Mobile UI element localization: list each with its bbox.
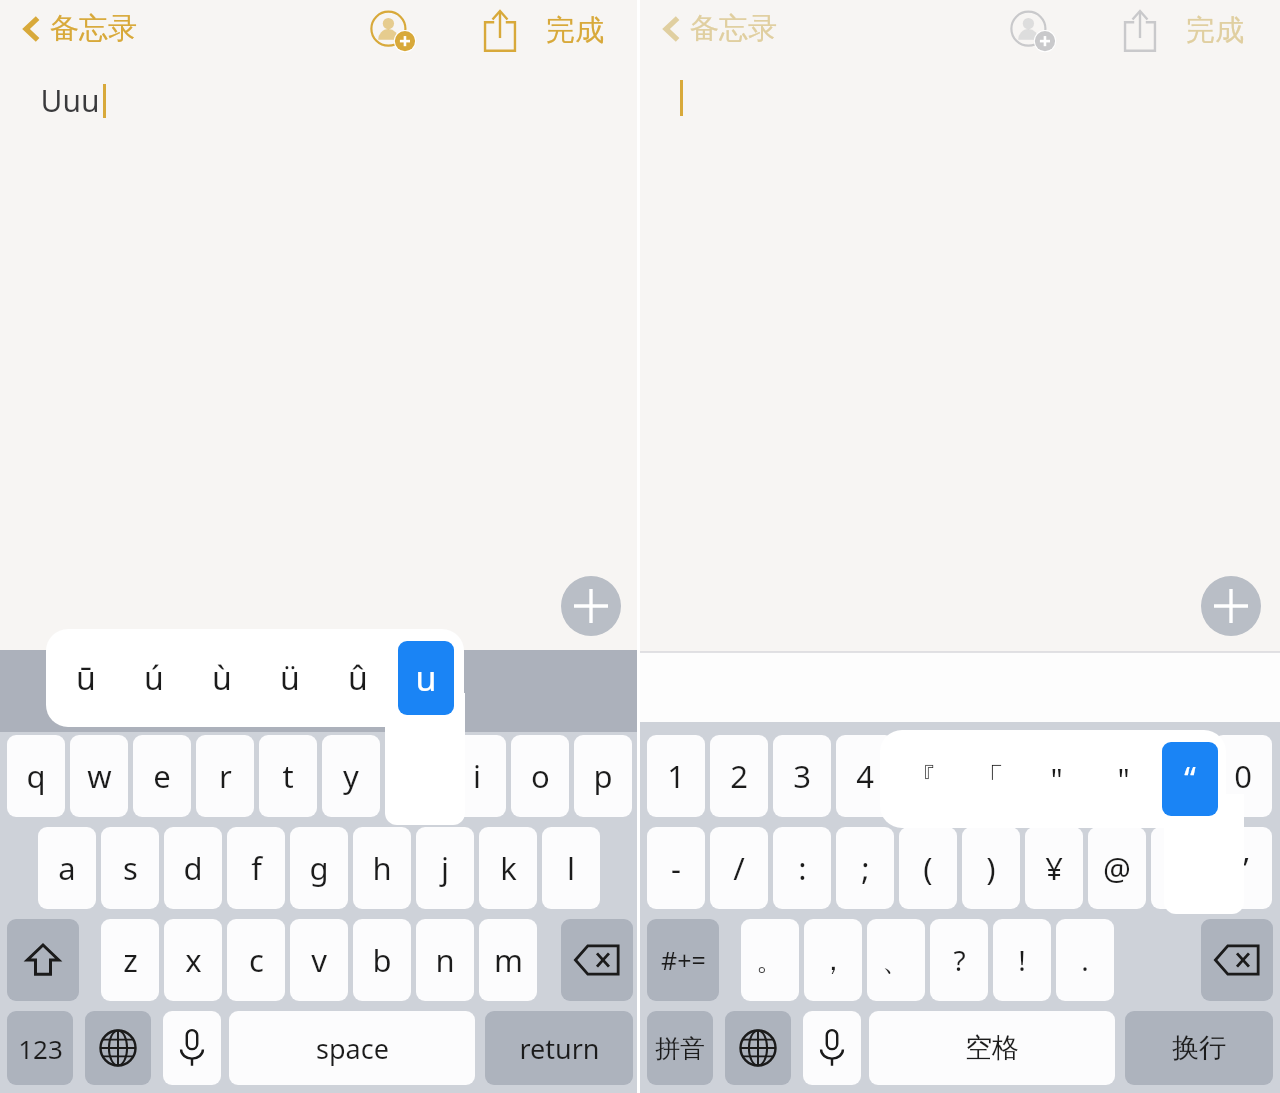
button[interactable]: : [773,827,831,909]
button[interactable]: ， [804,919,862,1001]
button[interactable] [803,1011,861,1085]
button[interactable]: Add attachment [561,576,621,636]
button[interactable]: Add people [362,6,424,56]
button[interactable]: 6 [962,735,1020,817]
button[interactable]: h [353,827,411,909]
button[interactable]: @ [1088,827,1146,909]
staticText: a [58,847,76,889]
button[interactable]: q [7,735,65,817]
button[interactable]: " [1095,742,1151,816]
button[interactable]: 完成 [1180,8,1250,53]
button[interactable]: e [133,735,191,817]
button[interactable]: u [398,641,454,715]
staticText: Uuu [40,80,100,121]
button[interactable]: 4 [836,735,894,817]
button[interactable]: Share [472,6,528,56]
button[interactable]: w [70,735,128,817]
staticText: : [798,847,807,889]
button[interactable] [85,1011,151,1085]
button[interactable]: 拼音 [647,1011,713,1085]
button[interactable]: “ [1162,742,1218,816]
staticText: 9 [1171,755,1189,797]
button[interactable]: “ [1151,827,1209,909]
button[interactable]: ! [993,919,1051,1001]
button[interactable]: j [416,827,474,909]
button[interactable]: " [1028,742,1084,816]
button[interactable]: / [710,827,768,909]
button[interactable]: 8 [1088,735,1146,817]
button[interactable]: i [448,735,506,817]
staticText: ” [1237,847,1249,889]
button[interactable]: 2 [710,735,768,817]
button[interactable]: 9 [1151,735,1209,817]
button[interactable]: 备忘录 [658,6,781,51]
button[interactable]: b [353,919,411,1001]
button[interactable]: Add attachment [1201,576,1261,636]
button[interactable]: û [330,641,386,715]
button[interactable]: Add people [1002,6,1064,56]
button[interactable]: c [227,919,285,1001]
button[interactable]: 7 [1025,735,1083,817]
button[interactable]: return [485,1011,633,1085]
button[interactable]: f [227,827,285,909]
button[interactable]: 1 [647,735,705,817]
button[interactable]: s [101,827,159,909]
button[interactable]: p [574,735,632,817]
button[interactable]: 『 [894,742,950,816]
button[interactable]: ù [194,641,250,715]
button[interactable]: t [259,735,317,817]
button[interactable]: d [164,827,222,909]
staticText: x [185,939,202,981]
staticText: v [311,939,327,981]
staticText: 、 [882,943,910,978]
button[interactable]: 5 [899,735,957,817]
button[interactable]: - [647,827,705,909]
button[interactable]: 。 [741,919,799,1001]
button[interactable]: n [416,919,474,1001]
button[interactable]: ” [1214,827,1272,909]
button[interactable]: space [229,1011,475,1085]
button[interactable]: 0 [1214,735,1272,817]
button[interactable]: 3 [773,735,831,817]
button[interactable]: 备忘录 [18,6,141,51]
button[interactable]: y [322,735,380,817]
button[interactable]: ? [930,919,988,1001]
staticText: - [671,847,681,889]
staticText: ! [1018,941,1026,979]
button[interactable]: 完成 [540,8,610,53]
button[interactable]: 、 [867,919,925,1001]
button[interactable]: x [164,919,222,1001]
button[interactable]: g [290,827,348,909]
button[interactable]: k [479,827,537,909]
button[interactable]: ¥ [1025,827,1083,909]
button[interactable]: l [542,827,600,909]
button[interactable] [7,919,79,1001]
button[interactable]: 123 [7,1011,73,1085]
staticText: f [251,847,262,889]
button[interactable]: 换行 [1125,1011,1273,1085]
button[interactable]: Share [1112,6,1168,56]
button[interactable]: o [511,735,569,817]
staticText: c [249,939,264,981]
button[interactable]: z [101,919,159,1001]
button[interactable]: #+= [647,919,719,1001]
button[interactable]: ; [836,827,894,909]
button[interactable] [1201,919,1273,1001]
button[interactable]: ū [58,641,114,715]
staticText: space [316,1030,389,1067]
button[interactable] [163,1011,221,1085]
button[interactable]: v [290,919,348,1001]
button[interactable]: ü [262,641,318,715]
button[interactable]: a [38,827,96,909]
button[interactable]: ú [126,641,182,715]
button[interactable] [561,919,633,1001]
button[interactable]: 空格 [869,1011,1115,1085]
button[interactable]: m [479,919,537,1001]
button[interactable] [725,1011,791,1085]
button[interactable]: 「 [961,742,1017,816]
button[interactable]: ) [962,827,1020,909]
staticText: / [733,847,745,889]
button[interactable]: ( [899,827,957,909]
button[interactable]: . [1056,919,1114,1001]
button[interactable]: r [196,735,254,817]
